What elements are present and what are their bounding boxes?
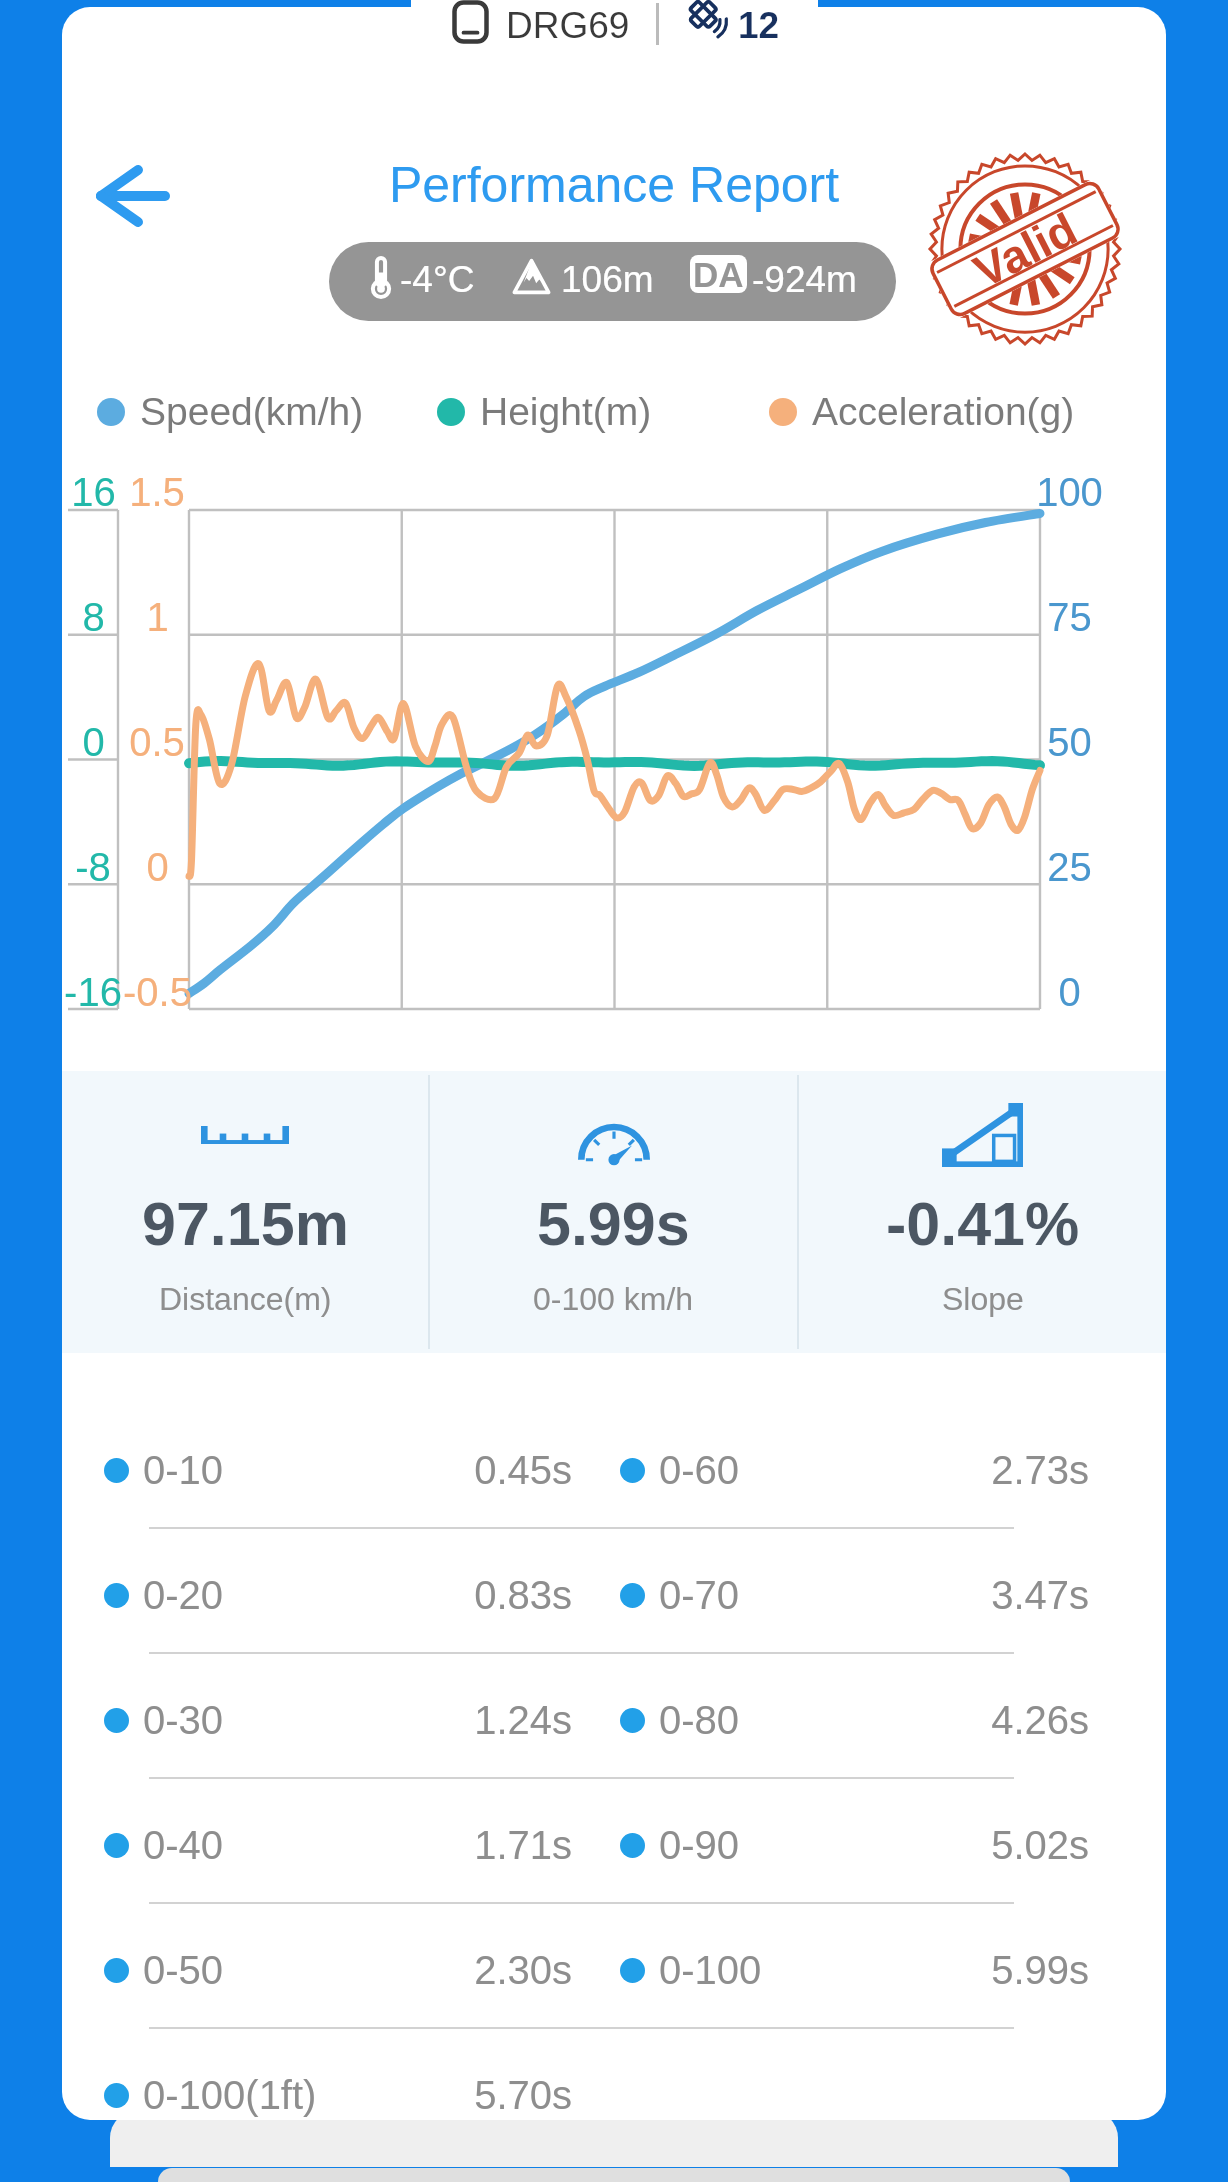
button[interactable]: 0-30: [82, 1672, 578, 1768]
button[interactable]: 0-60: [598, 1422, 1095, 1518]
staticText: 0-10: [143, 1448, 224, 1493]
staticText: 0-30: [143, 1698, 224, 1743]
staticText: Valid: [965, 202, 1085, 297]
staticText: 0: [1058, 970, 1081, 1015]
staticText: -4°C: [400, 259, 475, 300]
staticText: 0-100: [659, 1948, 762, 1993]
button[interactable]: 5.99s: [430, 1071, 797, 1353]
button[interactable]: 0-20: [82, 1547, 578, 1643]
button[interactable]: DRG69: [411, 0, 818, 57]
staticText: 16: [71, 470, 116, 515]
staticText: -0.5: [123, 970, 192, 1015]
button[interactable]: 0-10: [82, 1422, 578, 1518]
staticText: Performance Report: [62, 157, 1166, 213]
staticText: Slope: [942, 1281, 1024, 1317]
staticText: 106m: [561, 259, 654, 300]
staticText: -0.41%: [886, 1190, 1080, 1258]
button[interactable]: 0-90: [598, 1797, 1095, 1893]
staticText: 97.15m: [142, 1190, 349, 1258]
staticText: Acceleration(g): [812, 390, 1075, 434]
staticText: 0-90: [659, 1823, 740, 1868]
staticText: -924m: [752, 259, 857, 300]
staticText: 0: [146, 845, 169, 890]
staticText: 2.30s: [76, 1948, 572, 1993]
staticText: 1.24s: [76, 1698, 572, 1743]
staticText: 0-20: [143, 1573, 224, 1618]
button[interactable]: 0-70: [598, 1547, 1095, 1643]
staticText: 0-60: [659, 1448, 740, 1493]
staticText: 0.83s: [76, 1573, 572, 1618]
staticText: 5.99s: [537, 1190, 690, 1258]
staticText: Distance(m): [159, 1281, 332, 1317]
staticText: 25: [1047, 845, 1092, 890]
staticText: 0-50: [143, 1948, 224, 1993]
staticText: DA: [693, 255, 744, 293]
staticText: 0.5: [129, 720, 185, 765]
staticText: 0.45s: [76, 1448, 572, 1493]
staticText: 5.70s: [76, 2073, 572, 2118]
staticText: 100: [1036, 470, 1103, 515]
staticText: 0-100 km/h: [533, 1281, 694, 1317]
button[interactable]: 0-100(1ft): [82, 2047, 578, 2120]
staticText: -16: [64, 970, 122, 1015]
button[interactable]: 0-40: [82, 1797, 578, 1893]
staticText: 1.5: [129, 470, 185, 515]
staticText: Speed(km/h): [140, 390, 364, 434]
staticText: 1: [146, 595, 169, 640]
staticText: Height(m): [480, 390, 652, 434]
staticText: 2.73s: [592, 1448, 1089, 1493]
button[interactable]: -0.41%: [799, 1071, 1166, 1353]
staticText: 12: [738, 5, 780, 46]
staticText: 4.26s: [592, 1698, 1089, 1743]
staticText: 0-80: [659, 1698, 740, 1743]
staticText: 5.99s: [592, 1948, 1089, 1993]
staticText: -8: [75, 845, 111, 890]
staticText: DRG69: [506, 5, 630, 46]
staticText: 50: [1047, 720, 1092, 765]
staticText: 75: [1047, 595, 1092, 640]
button[interactable]: 97.15m: [62, 1071, 428, 1353]
button[interactable]: 0-50: [82, 1922, 578, 2018]
staticText: 0-40: [143, 1823, 224, 1868]
button[interactable]: 0-100: [598, 1922, 1095, 2018]
button[interactable]: Back: [82, 151, 184, 241]
staticText: 1.71s: [76, 1823, 572, 1868]
button[interactable]: -4°C: [329, 242, 896, 321]
staticText: 0-100(1ft): [143, 2073, 317, 2118]
button[interactable]: 0-80: [598, 1672, 1095, 1768]
staticText: 0-70: [659, 1573, 740, 1618]
staticText: 5.02s: [592, 1823, 1089, 1868]
staticText: 0: [82, 720, 105, 765]
staticText: 8: [82, 595, 105, 640]
staticText: 3.47s: [592, 1573, 1089, 1618]
